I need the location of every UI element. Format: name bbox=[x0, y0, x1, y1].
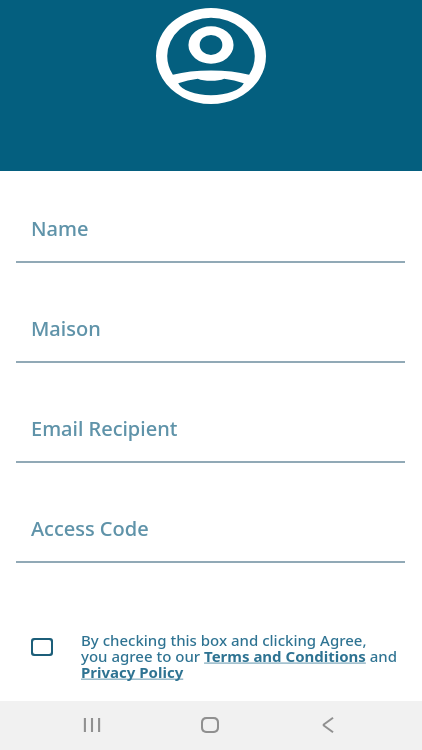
button[interactable]: Access Code bbox=[16, 503, 405, 563]
button[interactable]: By checking this box and clicking Agree,… bbox=[24, 626, 406, 690]
staticText: By checking this box and clicking Agree,… bbox=[81, 630, 406, 682]
staticText: Access Code bbox=[31, 515, 149, 542]
button[interactable]: Maison bbox=[16, 303, 405, 363]
staticText: Name bbox=[31, 215, 89, 242]
button[interactable]: Email Recipient bbox=[16, 403, 405, 463]
button[interactable]: Back bbox=[304, 701, 352, 749]
other: Profile avatar bbox=[156, 8, 266, 104]
button[interactable]: Home bbox=[186, 701, 234, 749]
button[interactable]: Name bbox=[16, 203, 405, 263]
button[interactable]: Recent apps bbox=[68, 701, 116, 749]
staticText: Maison bbox=[31, 315, 101, 342]
staticText: Email Recipient bbox=[31, 415, 178, 442]
